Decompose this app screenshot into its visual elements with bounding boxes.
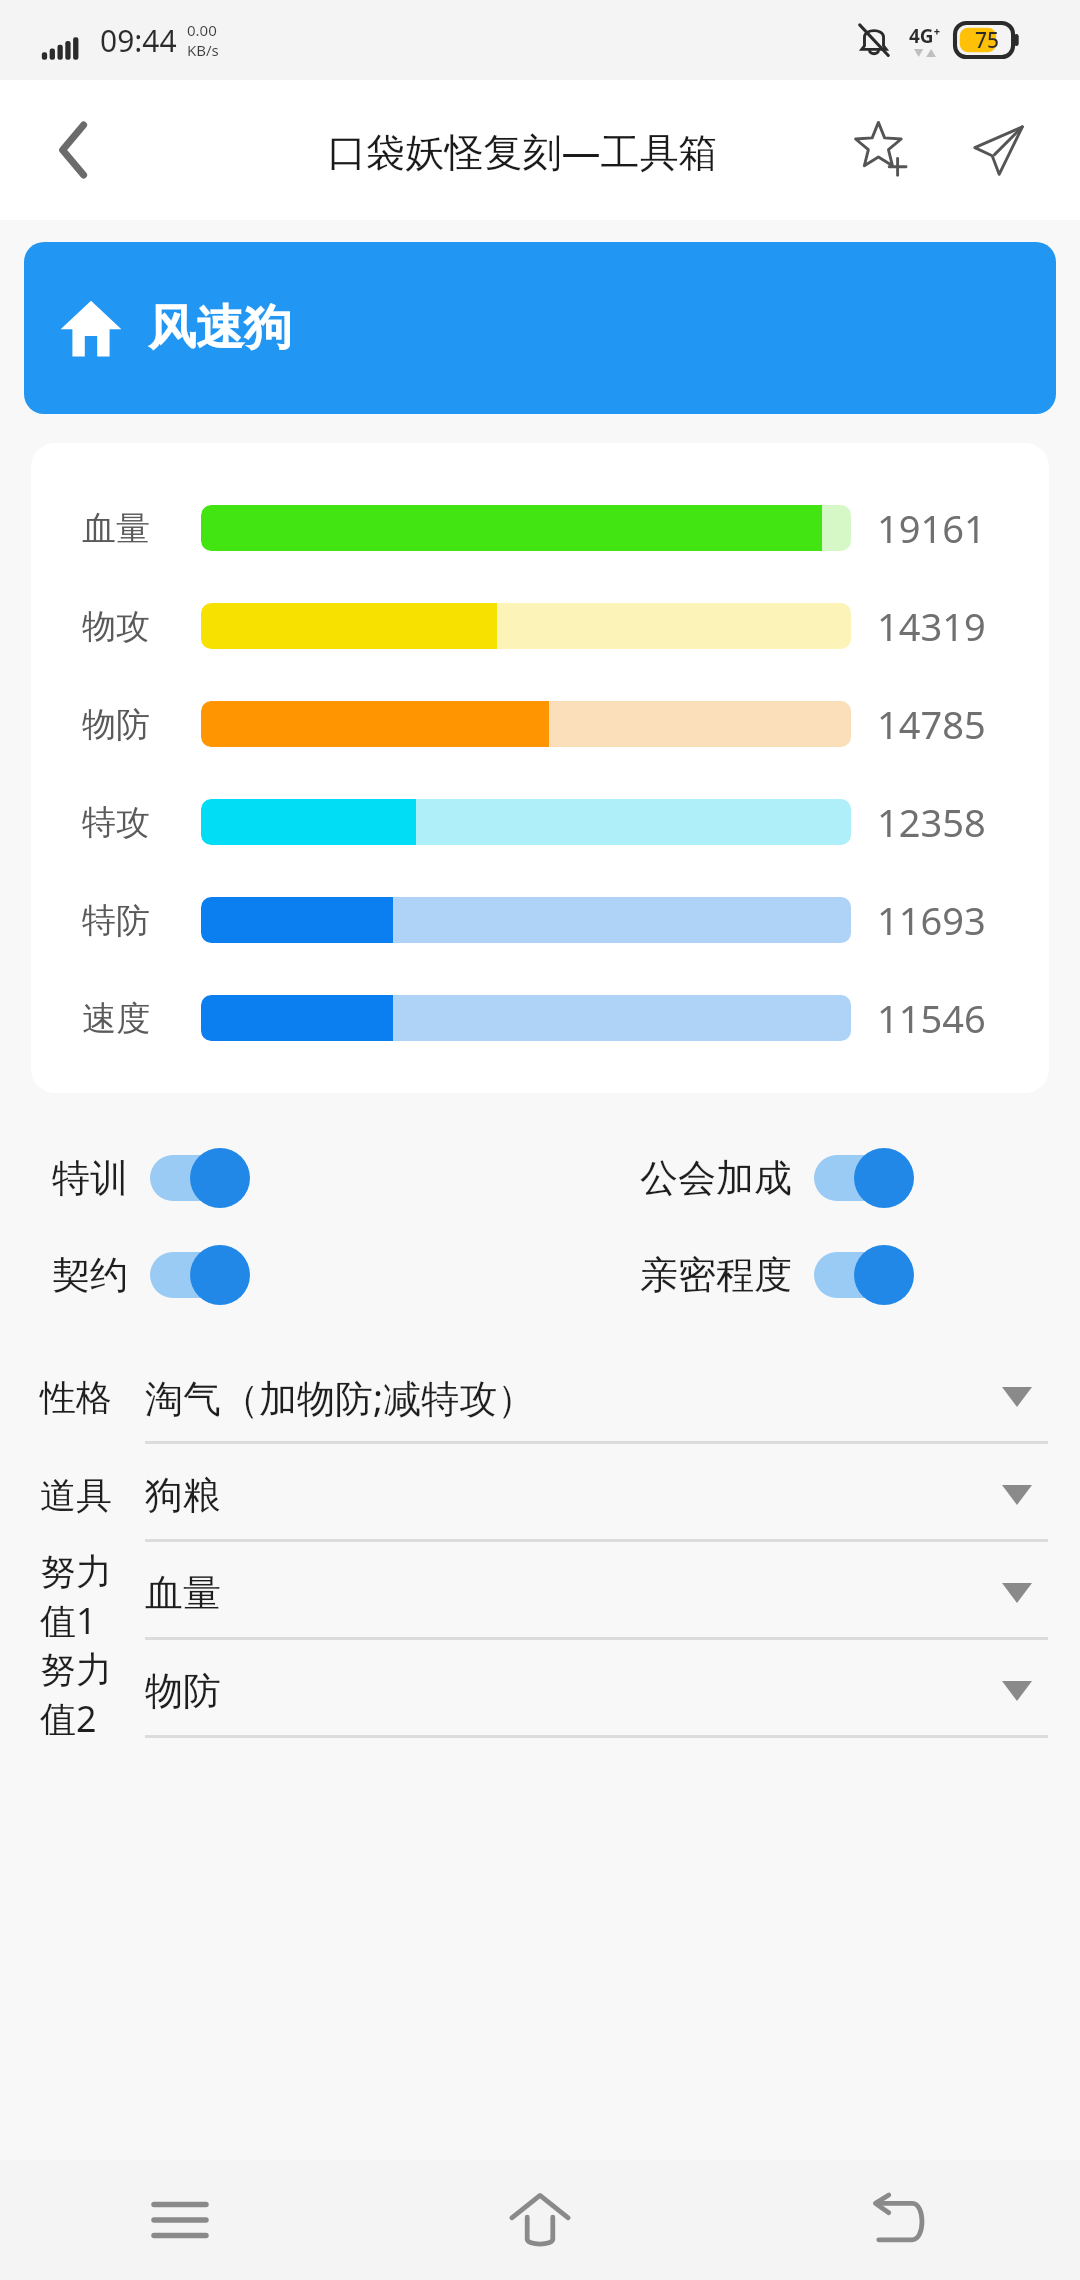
button[interactable]: 特训 xyxy=(52,1129,540,1226)
staticText: 物防 xyxy=(82,703,184,746)
staticText: 19161 xyxy=(877,502,986,554)
staticText: 道具 xyxy=(40,1473,145,1518)
button[interactable]: 物攻 xyxy=(31,577,1049,675)
staticText: 4G⁺ xyxy=(909,23,941,49)
staticText: 物攻 xyxy=(82,605,184,648)
staticText: 亲密程度 xyxy=(640,1251,792,1299)
staticText: 特训 xyxy=(52,1154,128,1202)
staticText: 物防 xyxy=(145,1667,1002,1715)
button[interactable]: 亲密程度 xyxy=(640,1226,1080,1323)
staticText: 75 xyxy=(975,26,1000,55)
button[interactable]: 特攻 xyxy=(31,773,1049,871)
button[interactable]: Add to favorites xyxy=(836,104,928,196)
button[interactable]: 速度 xyxy=(31,969,1049,1067)
button[interactable]: 物防 xyxy=(31,675,1049,773)
staticText: 特攻 xyxy=(82,801,184,844)
staticText: 0.00 xyxy=(187,20,217,40)
staticText: KB/s xyxy=(187,40,219,60)
button[interactable]: 特防 xyxy=(31,871,1049,969)
staticText: 09:44 xyxy=(100,20,177,61)
staticText: 契约 xyxy=(52,1251,128,1299)
button[interactable]: Back xyxy=(720,2160,1080,2280)
button[interactable]: 契约 xyxy=(52,1226,540,1323)
staticText: 12358 xyxy=(877,796,986,848)
staticText: 努力值1 xyxy=(40,1549,145,1637)
button[interactable]: 血量 xyxy=(31,479,1049,577)
staticText: 11546 xyxy=(877,992,986,1044)
staticText: 14319 xyxy=(877,600,986,652)
staticText: 特防 xyxy=(82,899,184,942)
staticText: 公会加成 xyxy=(640,1154,792,1202)
staticText: 性格 xyxy=(40,1375,145,1420)
staticText: 努力值2 xyxy=(40,1647,145,1735)
button[interactable]: Back xyxy=(36,112,112,188)
button[interactable]: 道具 xyxy=(0,1451,1080,1549)
staticText: 狗粮 xyxy=(145,1471,1002,1519)
button[interactable]: Home xyxy=(360,2160,720,2280)
staticText: 14785 xyxy=(877,698,986,750)
button[interactable]: 努力值1 xyxy=(0,1549,1080,1647)
button[interactable]: 性格 xyxy=(0,1353,1080,1451)
staticText: 速度 xyxy=(82,997,184,1040)
staticText: 血量 xyxy=(82,507,184,550)
button[interactable]: Share xyxy=(952,104,1044,196)
button[interactable]: 努力值2 xyxy=(0,1647,1080,1745)
button[interactable]: 风速狗 xyxy=(24,242,1056,414)
staticText: 口袋妖怪复刻—工具箱 xyxy=(327,124,718,177)
button[interactable]: 公会加成 xyxy=(640,1129,1080,1226)
staticText: 风速狗 xyxy=(148,298,292,358)
staticText: 淘气（加物防;减特攻） xyxy=(145,1371,1002,1423)
staticText: 11693 xyxy=(877,894,986,946)
staticText: 血量 xyxy=(145,1569,1002,1617)
button[interactable]: Recent apps xyxy=(0,2160,360,2280)
